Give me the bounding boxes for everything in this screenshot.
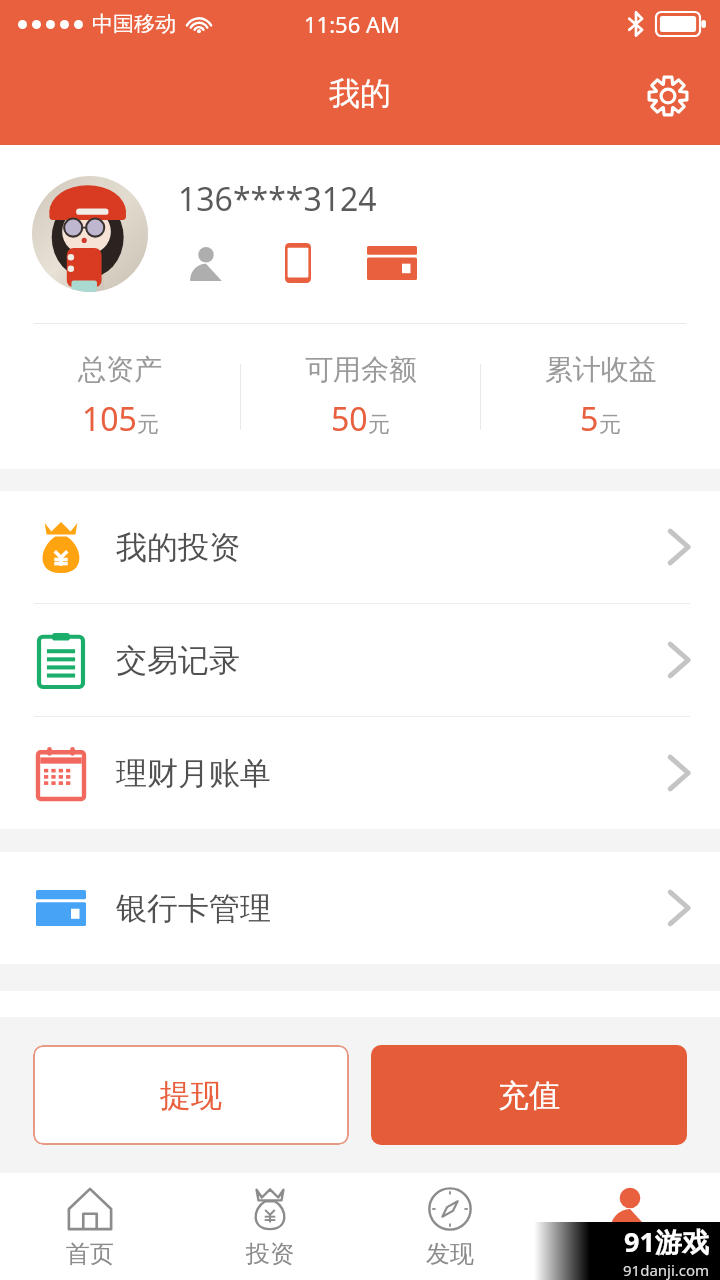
staticText: 元 xyxy=(137,411,159,439)
staticText: 理财月账单 xyxy=(116,754,271,793)
staticText: 可用余额 xyxy=(305,352,417,387)
button[interactable]: 发现 xyxy=(360,1173,540,1280)
staticText: 105 xyxy=(82,397,137,441)
button[interactable]: Settings xyxy=(638,66,698,126)
staticText: 元 xyxy=(368,411,390,439)
button[interactable]: 交易记录 xyxy=(0,604,720,716)
button[interactable]: Avatar xyxy=(32,176,148,292)
staticText: 发现 xyxy=(426,1239,474,1269)
staticText: 充值 xyxy=(498,1076,560,1115)
staticText: 5 xyxy=(580,397,599,441)
button[interactable]: Phone xyxy=(270,235,326,291)
staticText: 11:56 AM xyxy=(304,9,400,39)
staticText: 136****3124 xyxy=(178,177,377,221)
button[interactable]: Bank card xyxy=(364,235,420,291)
button[interactable]: 充值 xyxy=(371,1045,687,1145)
staticText: 投资 xyxy=(246,1239,294,1269)
staticText: 50 xyxy=(331,397,368,441)
staticText: 累计收益 xyxy=(545,352,657,387)
staticText: 91danji.com xyxy=(623,1260,710,1280)
staticText: 中国移动 xyxy=(92,11,176,37)
button[interactable]: 提现 xyxy=(33,1045,349,1145)
button[interactable]: 总资产 xyxy=(0,352,240,441)
staticText: 交易记录 xyxy=(116,641,240,680)
button[interactable]: 我的 xyxy=(540,1173,720,1280)
staticText: 提现 xyxy=(160,1076,222,1115)
button[interactable]: 累计收益 xyxy=(481,352,720,441)
staticText: 我的投资 xyxy=(116,528,240,567)
button[interactable]: 可用余额 xyxy=(241,352,480,441)
button[interactable]: Profile xyxy=(178,235,234,291)
staticText: 元 xyxy=(599,411,621,439)
button[interactable]: 银行卡管理 xyxy=(0,852,720,964)
staticText: 总资产 xyxy=(78,352,162,387)
button[interactable]: 我的投资 xyxy=(0,491,720,603)
button[interactable]: 理财月账单 xyxy=(0,717,720,829)
button[interactable]: 首页 xyxy=(0,1173,180,1280)
staticText: 91游戏 xyxy=(624,1223,709,1260)
staticText: 银行卡管理 xyxy=(116,889,271,928)
staticText: 首页 xyxy=(66,1239,114,1269)
button[interactable]: 投资 xyxy=(180,1173,360,1280)
staticText: 我的 xyxy=(606,1239,654,1269)
staticText: 我的 xyxy=(329,74,391,113)
